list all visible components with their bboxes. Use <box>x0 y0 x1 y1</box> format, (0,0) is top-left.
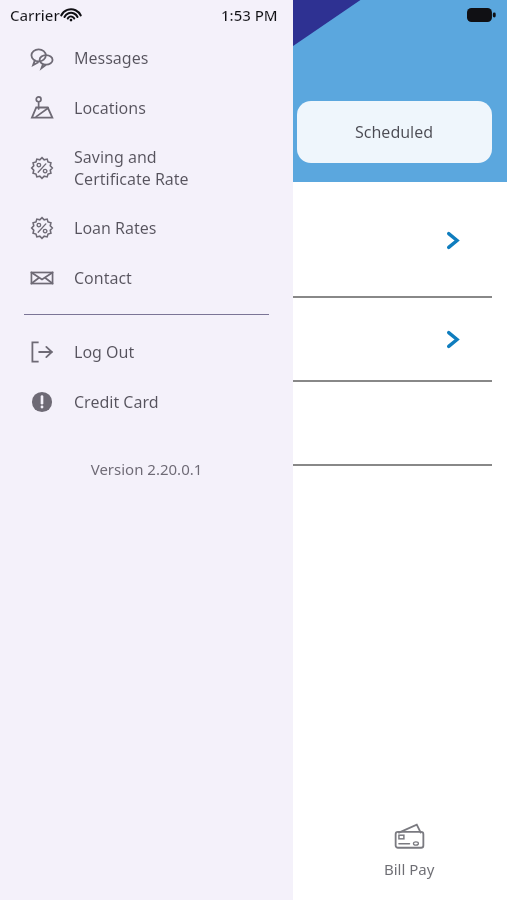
other: View details <box>443 231 462 250</box>
staticText: Messages <box>74 47 149 69</box>
staticText: Saving and <box>74 146 157 168</box>
button[interactable]: View details <box>230 185 492 296</box>
button[interactable]: Bill Pay <box>378 816 441 885</box>
other: Bill Pay <box>393 822 426 855</box>
staticText: Scheduled <box>355 121 434 143</box>
staticText: Log Out <box>74 341 135 363</box>
other: Loan Rates <box>30 216 54 240</box>
other: Log Out <box>30 340 54 364</box>
staticText: 1:53 PM <box>221 5 278 25</box>
other: Locations <box>30 96 54 120</box>
staticText: Certificate Rate <box>74 168 189 190</box>
other: Messages <box>30 46 54 70</box>
staticText: Contact <box>74 267 132 289</box>
button[interactable]: Loan Rates <box>0 203 293 253</box>
button[interactable]: Messages <box>0 33 293 83</box>
button[interactable]: View details <box>230 298 492 380</box>
button[interactable]: Scheduled <box>297 101 492 163</box>
other: Credit Card <box>30 390 54 414</box>
button[interactable]: Saving and Certificate Rate <box>0 133 293 203</box>
staticText: Locations <box>74 97 146 119</box>
staticText: Credit Card <box>74 391 159 413</box>
button[interactable]: Contact <box>0 253 293 303</box>
staticText: Version 2.20.0.1 <box>0 459 293 479</box>
button[interactable]: Locations <box>0 83 293 133</box>
other: Saving and Certificate Rate <box>30 156 54 180</box>
other: View details <box>443 330 462 349</box>
button[interactable]: Log Out <box>0 327 293 377</box>
button[interactable] <box>230 382 492 464</box>
other: Contact <box>30 266 54 290</box>
button[interactable]: Credit Card <box>0 377 293 427</box>
staticText: Bill Pay <box>384 859 435 879</box>
staticText: Loan Rates <box>74 217 157 239</box>
staticText: Carrier <box>10 5 60 25</box>
